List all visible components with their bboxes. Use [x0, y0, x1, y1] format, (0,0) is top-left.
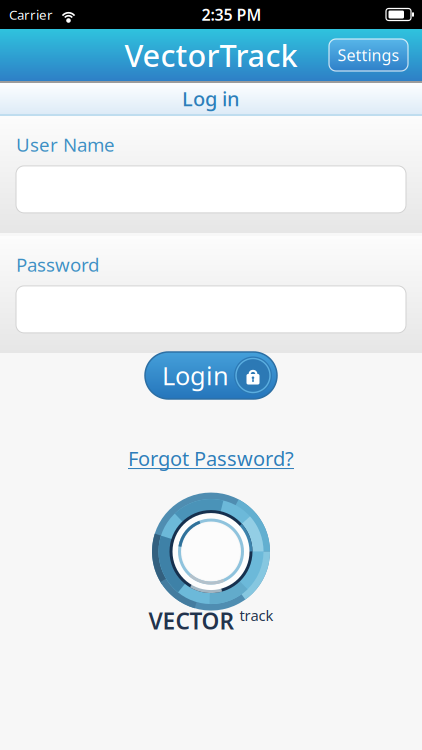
staticText: Forgot Password? [128, 445, 294, 472]
staticText: Login [162, 359, 229, 392]
button[interactable]: Login [145, 352, 277, 399]
staticText: Log in [182, 85, 240, 112]
staticText: Carrier [9, 6, 53, 23]
button[interactable]: Forgot Password? [128, 445, 294, 472]
staticText: VectorTrack [124, 35, 297, 75]
staticText: track [239, 606, 273, 625]
button[interactable]: Settings [329, 39, 408, 71]
staticText: Settings [337, 44, 399, 66]
staticText: VECTOR [148, 606, 234, 636]
staticText: User Name [16, 132, 115, 157]
staticText: Password [16, 252, 99, 277]
staticText: 2:35 PM [201, 4, 261, 25]
